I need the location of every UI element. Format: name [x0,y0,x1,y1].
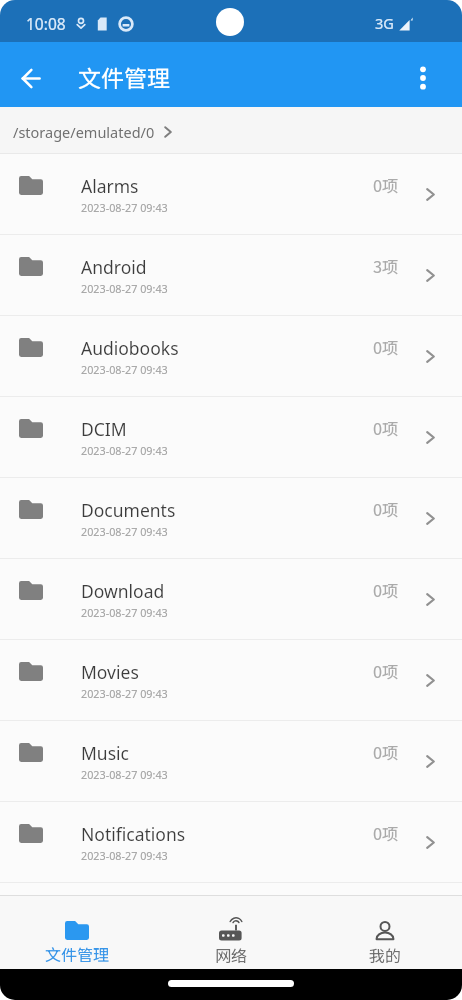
button[interactable]: Audiobooks [0,316,462,397]
button[interactable] [13,60,49,96]
staticText: 2023-08-27 09:43 [81,767,168,782]
staticText: DCIM [81,417,127,441]
button[interactable]: DCIM [0,397,462,478]
staticText: 2023-08-27 09:43 [81,605,168,620]
staticText: 0项 [373,659,399,683]
staticText: 0项 [373,740,399,764]
staticText: 0项 [373,578,399,602]
staticText: 0项 [373,173,399,197]
staticText: Download [81,579,165,603]
staticText: 2023-08-27 09:43 [81,443,168,458]
staticText: 文件管理 [45,942,110,965]
staticText: Audiobooks [81,336,179,360]
staticText: Documents [81,498,176,522]
button[interactable]: Alarms [0,154,462,235]
button[interactable] [405,60,441,96]
staticText: 0项 [373,821,399,845]
staticText: 2023-08-27 09:43 [81,686,168,701]
staticText: 文件管理 [78,60,170,93]
staticText: 2023-08-27 09:43 [81,200,168,215]
staticText: 3G [375,13,394,33]
button[interactable]: 文件管理 [0,896,154,969]
staticText: 0项 [373,416,399,440]
staticText: 0项 [373,497,399,521]
staticText: 10:08 [26,13,66,34]
staticText: 3项 [373,254,399,278]
staticText: /storage/emulated/0 [13,122,155,142]
button[interactable]: Movies [0,640,462,721]
button[interactable]: 网络 [154,896,308,969]
staticText: 2023-08-27 09:43 [81,362,168,377]
staticText: Notifications [81,822,186,846]
staticText: 网络 [215,943,248,966]
button[interactable]: Documents [0,478,462,559]
staticText: Movies [81,660,139,684]
staticText: Alarms [81,174,139,198]
button[interactable]: 我的 [308,896,462,969]
staticText: 我的 [369,943,402,966]
staticText: 2023-08-27 09:43 [81,281,168,296]
button[interactable]: Android [0,235,462,316]
staticText: Music [81,741,129,765]
button[interactable]: Notifications [0,802,462,883]
staticText: 0项 [373,335,399,359]
staticText: 2023-08-27 09:43 [81,524,168,539]
staticText: Android [81,255,147,279]
staticText: 2023-08-27 09:43 [81,848,168,863]
button[interactable]: Music [0,721,462,802]
button[interactable]: Download [0,559,462,640]
